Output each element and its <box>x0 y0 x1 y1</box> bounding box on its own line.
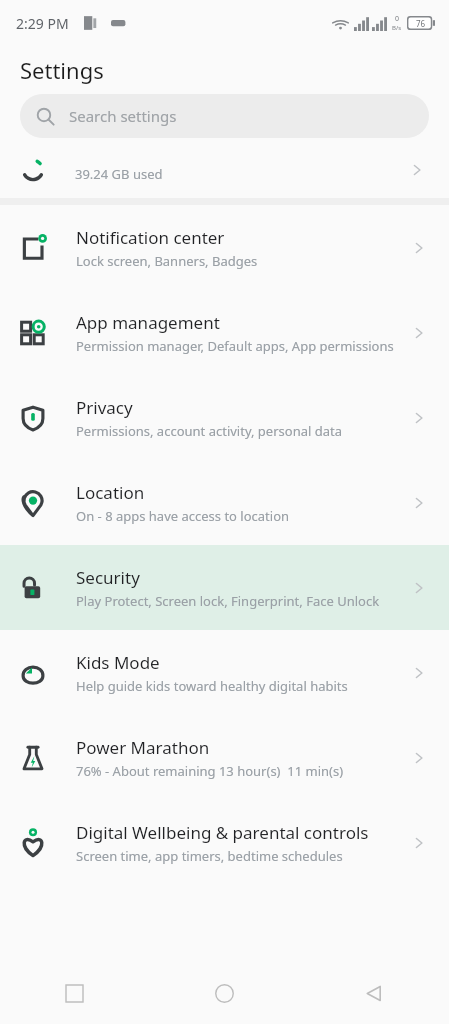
staticText: Notification center <box>76 226 225 249</box>
staticText: Permissions, account activity, personal … <box>76 422 342 440</box>
staticText: On - 8 apps have access to location <box>76 507 290 525</box>
button[interactable]: Security <box>0 545 449 630</box>
staticText: Search settings <box>69 106 177 126</box>
staticText: Settings <box>20 55 104 85</box>
staticText: Privacy <box>76 396 133 419</box>
staticText: App management <box>76 311 220 334</box>
staticText: Play Protect, Screen lock, Fingerprint, … <box>76 592 380 610</box>
button[interactable]: Kids Mode <box>0 630 449 715</box>
staticText: 76 <box>416 18 426 29</box>
button[interactable]: Notification center <box>0 205 449 290</box>
staticText: 2:29 PM <box>16 14 69 33</box>
button[interactable]: Home <box>149 962 299 1024</box>
staticText: Location <box>76 481 145 504</box>
staticText: Digital Wellbeing & parental controls <box>76 821 369 844</box>
button[interactable]: Back <box>299 962 449 1024</box>
staticText: Security <box>76 566 140 589</box>
staticText: Permission manager, Default apps, App pe… <box>76 337 394 355</box>
staticText: 76% - About remaining 13 hour(s) 11 min(… <box>76 762 344 780</box>
staticText: B/s <box>392 24 402 32</box>
button[interactable]: Digital Wellbeing & parental controls <box>0 800 449 885</box>
staticText: 39.24 GB used <box>75 165 163 183</box>
staticText: Screen time, app timers, bedtime schedul… <box>76 847 343 865</box>
staticText: Kids Mode <box>76 651 160 674</box>
button[interactable]: Privacy <box>0 375 449 460</box>
staticText: Power Marathon <box>76 736 210 759</box>
button[interactable]: 39.24 GB used <box>0 146 449 198</box>
button[interactable]: App management <box>0 290 449 375</box>
staticText: 0 <box>395 14 400 24</box>
button[interactable]: Recents <box>0 962 149 1024</box>
staticText: Help guide kids toward healthy digital h… <box>76 677 348 695</box>
button[interactable]: Location <box>0 460 449 545</box>
button[interactable]: Search settings <box>20 94 429 138</box>
staticText: Lock screen, Banners, Badges <box>76 252 258 270</box>
button[interactable]: Power Marathon <box>0 715 449 800</box>
